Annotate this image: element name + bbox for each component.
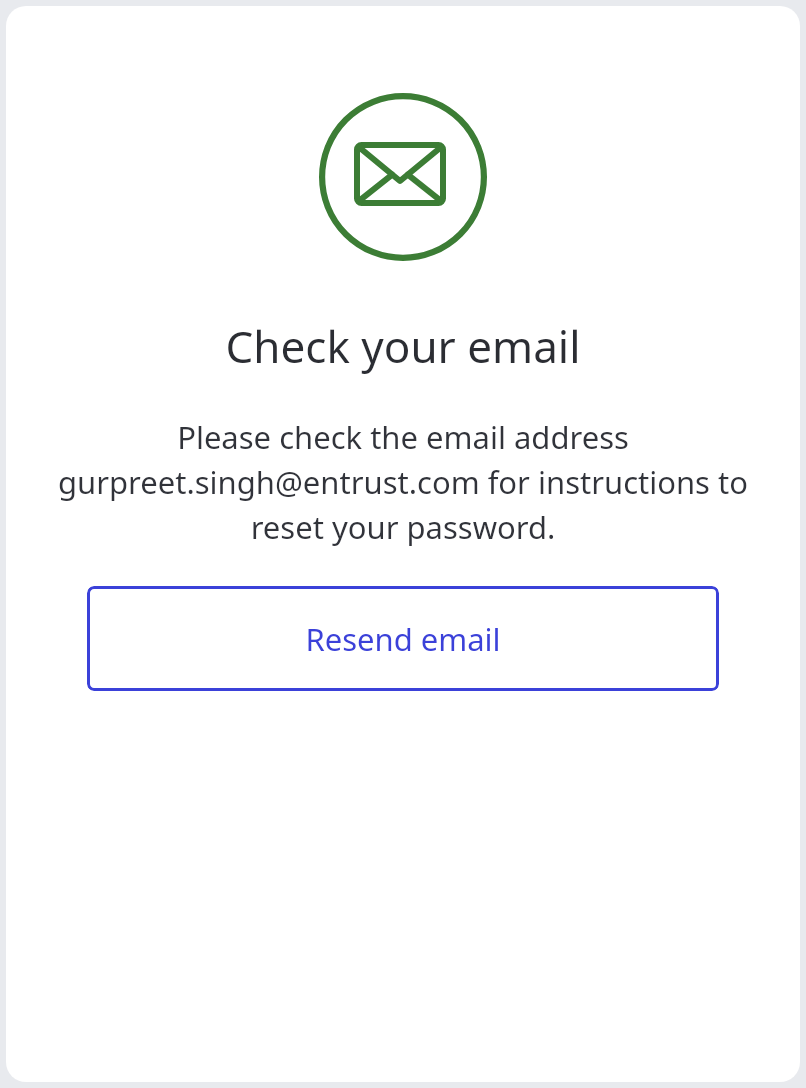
staticText: Check your email <box>225 316 581 376</box>
button[interactable]: Resend email <box>87 586 719 691</box>
staticText: Resend email <box>305 618 501 660</box>
staticText: Please check the email address gurpreet.… <box>58 416 748 548</box>
other: Email sent <box>316 90 490 264</box>
